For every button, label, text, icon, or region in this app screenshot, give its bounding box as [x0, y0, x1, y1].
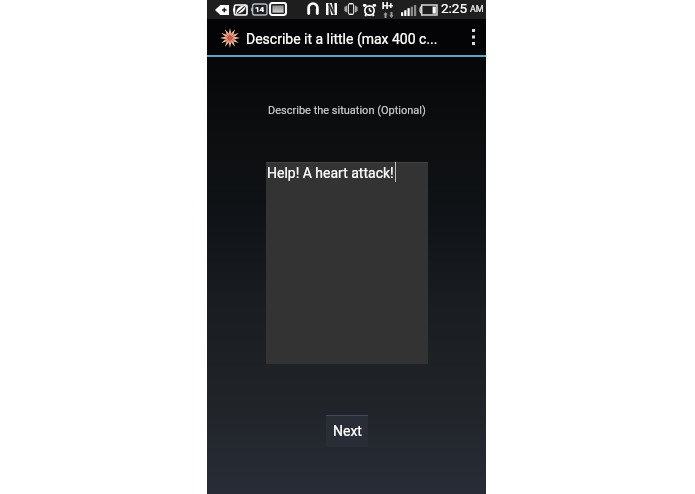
- staticText: Next: [333, 423, 362, 439]
- staticText: 14: [255, 5, 265, 14]
- button[interactable]: More options: [460, 19, 486, 55]
- staticText: Describe it a little (max 400 c...: [246, 31, 438, 47]
- staticText: 2:25: [441, 0, 468, 16]
- staticText: Help! A heart attack!: [267, 165, 394, 181]
- button[interactable]: Help! A heart attack!: [266, 162, 428, 364]
- staticText: H+: [382, 1, 394, 12]
- staticText: AM: [470, 4, 484, 15]
- staticText: Describe the situation (Optional): [268, 104, 426, 117]
- button[interactable]: Next: [326, 415, 368, 447]
